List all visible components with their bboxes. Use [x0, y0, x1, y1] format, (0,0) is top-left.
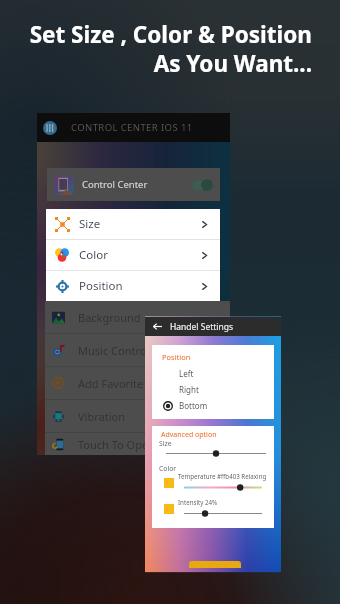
- staticText: Set Size , Color & Position: [16, 19, 312, 50]
- staticText: Add Favorite App: [78, 376, 167, 391]
- staticText: Intensity 24%: [178, 498, 218, 506]
- staticText: Music Control: [78, 343, 150, 358]
- staticText: As You Want...: [16, 48, 312, 79]
- staticText: Advanced option: [161, 430, 217, 440]
- staticText: Position: [162, 352, 191, 362]
- button[interactable]: Color: [46, 240, 220, 270]
- button[interactable]: Left: [162, 368, 274, 379]
- staticText: Touch To Open: [78, 437, 155, 452]
- button[interactable]: Right: [162, 384, 274, 395]
- staticText: Handel Settings: [170, 321, 234, 333]
- button[interactable]: Background: [45, 301, 230, 333]
- staticText: Temperature #ffb403 Relaxing: [178, 472, 267, 480]
- button[interactable]: Touch To Open: [45, 433, 230, 455]
- button[interactable]: Control Center: [47, 168, 220, 201]
- button[interactable]: Vibration: [45, 400, 230, 432]
- button[interactable]: Bottom: [162, 400, 274, 411]
- staticText: Right: [179, 384, 199, 395]
- staticText: Bottom: [179, 400, 208, 411]
- button[interactable]: Music Control: [45, 334, 230, 366]
- button[interactable]: Size: [46, 209, 220, 239]
- staticText: CONTROL CENTER IOS 11: [71, 121, 193, 134]
- staticText: Background: [78, 310, 141, 325]
- staticText: Vibration: [78, 409, 125, 424]
- staticText: Position: [79, 278, 123, 294]
- staticText: Size: [79, 216, 101, 232]
- staticText: Color: [159, 464, 177, 473]
- staticText: Size: [159, 439, 172, 448]
- button[interactable]: Back: [152, 321, 163, 332]
- button[interactable]: Handle: [189, 561, 241, 568]
- staticText: Left: [179, 368, 194, 379]
- staticText: Color: [79, 247, 108, 263]
- button[interactable]: Position: [46, 271, 220, 301]
- staticText: Control Center: [82, 178, 148, 191]
- button[interactable]: Add Favorite App: [45, 367, 230, 399]
